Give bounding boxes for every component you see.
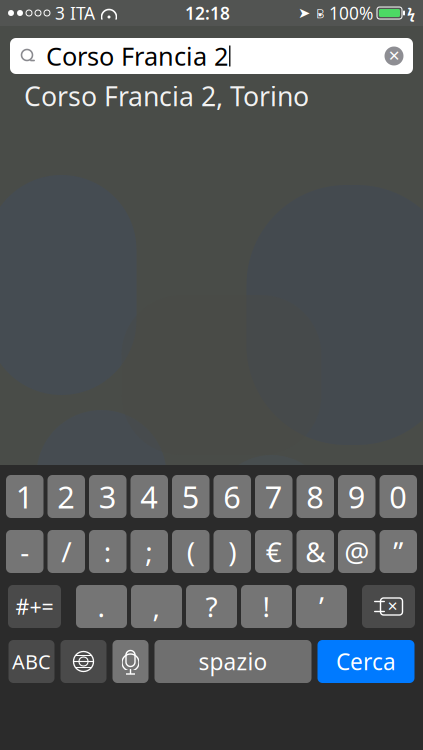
staticText: 1 xyxy=(16,476,34,517)
button[interactable]: . xyxy=(76,585,127,628)
button[interactable]: Letters xyxy=(8,640,54,683)
button[interactable]: ( xyxy=(172,530,209,573)
staticText: 0 xyxy=(389,476,407,517)
staticText: ( xyxy=(187,533,195,570)
button[interactable]: ) xyxy=(213,530,251,573)
button[interactable]: 0 xyxy=(379,475,417,518)
button[interactable]: Clear text xyxy=(379,41,409,71)
button[interactable]: 1 xyxy=(6,475,43,518)
staticText: ➤ xyxy=(298,5,310,21)
staticText: ’ xyxy=(319,588,324,625)
staticText: - xyxy=(20,533,29,570)
staticText: ? xyxy=(205,588,217,625)
staticText: Cerca xyxy=(336,646,396,676)
staticText: 9 xyxy=(348,476,366,517)
button[interactable]: - xyxy=(6,530,43,573)
staticText: Corso Francia 2, Torino xyxy=(24,78,309,114)
button[interactable]: Space xyxy=(154,640,311,683)
button[interactable]: Dictation xyxy=(112,640,148,683)
button[interactable]: 4 xyxy=(130,475,168,518)
staticText: ) xyxy=(228,533,236,570)
staticText: € xyxy=(266,533,282,570)
button[interactable]: 2 xyxy=(47,475,85,518)
button[interactable]: ’ xyxy=(296,585,347,628)
button[interactable]: Corso Francia 2, Torino xyxy=(0,74,423,118)
staticText: Corso Francia 2 xyxy=(46,39,228,73)
button[interactable]: 7 xyxy=(255,475,292,518)
button[interactable]: 5 xyxy=(172,475,209,518)
button[interactable]: ! xyxy=(241,585,292,628)
staticText: 3 ITA xyxy=(50,1,95,24)
staticText: ; xyxy=(145,533,153,570)
staticText: 12:18 xyxy=(185,1,230,24)
staticText: 7 xyxy=(265,476,283,517)
staticText: @ xyxy=(344,533,369,570)
staticText: 2 xyxy=(57,476,75,517)
button[interactable]: 3 xyxy=(89,475,126,518)
button[interactable]: / xyxy=(47,530,85,573)
staticText: #+= xyxy=(15,592,53,621)
button[interactable]: € xyxy=(255,530,292,573)
staticText: ✕ xyxy=(388,48,400,64)
staticText: / xyxy=(61,533,71,570)
button[interactable]: , xyxy=(131,585,182,628)
button[interactable]: ” xyxy=(379,530,417,573)
button[interactable]: Delete xyxy=(362,585,415,628)
button[interactable]: ? xyxy=(186,585,237,628)
staticText: ✕ xyxy=(387,599,398,614)
button[interactable]: & xyxy=(296,530,334,573)
staticText: 8 xyxy=(306,476,324,517)
staticText: 5 xyxy=(182,476,200,517)
staticText: B xyxy=(316,4,324,22)
button[interactable]: 8 xyxy=(296,475,334,518)
button[interactable]: More symbols xyxy=(8,585,61,628)
staticText: ϟ xyxy=(407,3,415,23)
staticText: . xyxy=(97,588,105,625)
staticText: , xyxy=(152,588,160,625)
staticText: ᛫ xyxy=(317,3,322,23)
button[interactable]: : xyxy=(89,530,126,573)
button[interactable]: 6 xyxy=(213,475,251,518)
button[interactable]: 9 xyxy=(338,475,375,518)
button[interactable]: Next keyboard xyxy=(60,640,106,683)
staticText: 100% xyxy=(329,1,373,24)
staticText: 6 xyxy=(223,476,241,517)
staticText: 3 xyxy=(99,476,117,517)
staticText: ” xyxy=(393,533,403,570)
staticText: ABC xyxy=(12,648,51,675)
staticText: : xyxy=(104,533,112,570)
button[interactable]: @ xyxy=(338,530,375,573)
staticText: 4 xyxy=(140,476,158,517)
button[interactable]: Search xyxy=(317,640,414,683)
staticText: & xyxy=(305,533,325,570)
button[interactable]: ; xyxy=(130,530,168,573)
staticText: ! xyxy=(262,588,270,625)
staticText: spazio xyxy=(198,646,267,676)
